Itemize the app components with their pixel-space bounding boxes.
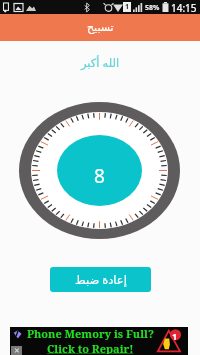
staticText: إعادة ضبط (75, 272, 127, 288)
button[interactable]: Counter (19, 102, 180, 239)
staticText: Click to Repair! (47, 341, 134, 354)
button[interactable]: Close ad (11, 346, 22, 355)
staticText: 1 (125, 2, 130, 12)
staticText: ✕ (14, 347, 20, 355)
button[interactable]: إعادة ضبط (50, 267, 151, 292)
staticText: تسبيح (87, 21, 114, 34)
staticText: 1 (172, 330, 178, 342)
staticText: 8 (94, 163, 105, 189)
staticText: الله أكبر (81, 55, 120, 71)
staticText: 58% (145, 3, 160, 13)
staticText: Phone Memory is Full? (27, 326, 154, 341)
staticText: 14:15 (171, 1, 197, 15)
button[interactable]: Phone Memory is Full? (10, 327, 188, 355)
